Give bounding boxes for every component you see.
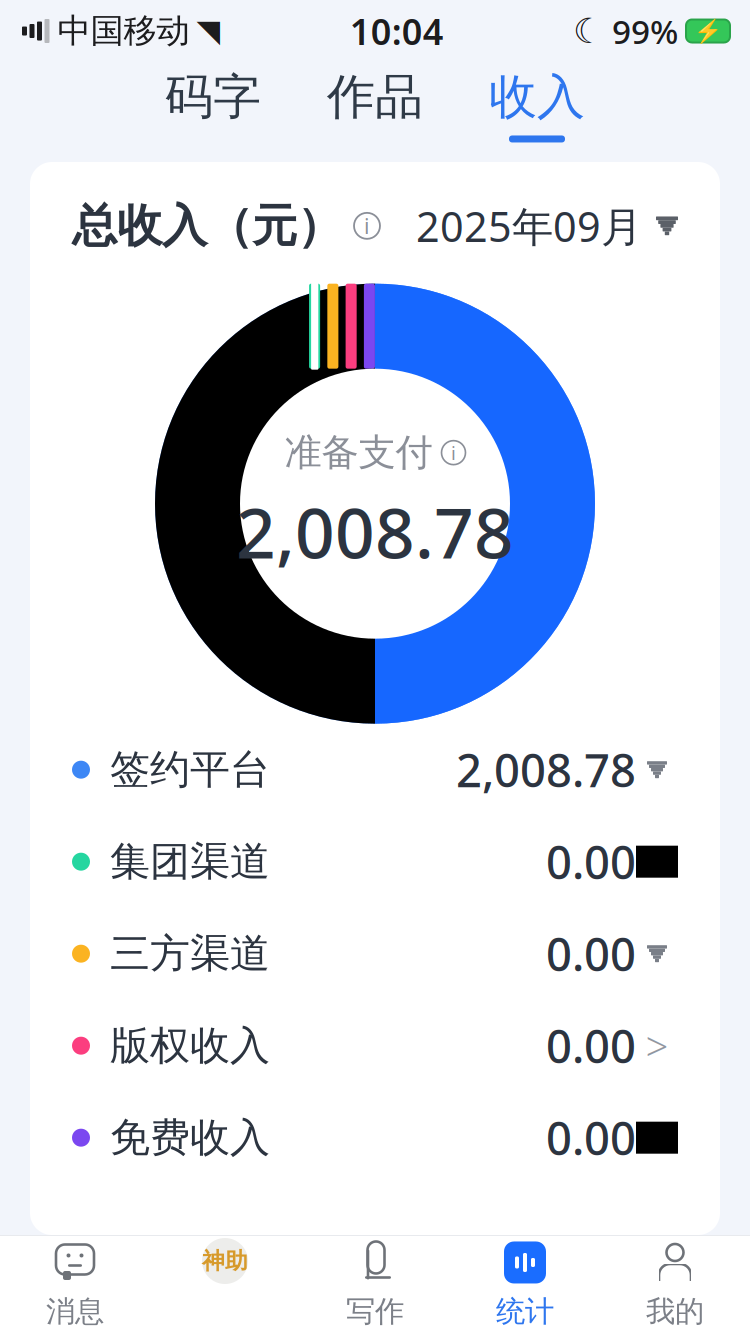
staticText: 0.00 [546,832,636,892]
staticText: > [645,1019,668,1072]
staticText: 收入 [489,67,585,126]
button[interactable]: 统计 [450,1235,600,1334]
staticText: 码字 [165,67,261,126]
button[interactable]: 版权收入 [30,1000,720,1092]
staticText: 免费收入 [110,1113,270,1162]
staticText: 我的 [646,1293,704,1329]
staticText: 中国移动 [57,10,189,51]
button[interactable]: 码字 [158,67,268,142]
staticText: 2025年09月 [416,198,642,253]
staticText: 0.00 [546,1016,636,1076]
button[interactable]: 收入 [482,67,592,142]
button[interactable]: 作品 [320,67,430,142]
staticText: 签约平台 [110,745,270,794]
button[interactable]: 消息 [0,1235,150,1334]
staticText: 作品 [327,67,423,126]
staticText: 写作 [346,1293,404,1329]
staticText: 总收入（元） [72,198,342,254]
staticText: ☾ [573,11,604,51]
staticText: 消息 [46,1293,104,1329]
staticText: 2,008.78 [236,486,514,578]
staticText: 版权收入 [110,1021,270,1070]
button[interactable]: 写作 [300,1235,450,1334]
staticText: 10:04 [350,7,444,55]
staticText: ◥ [196,14,220,48]
button[interactable]: 我的 [600,1235,750,1334]
button[interactable]: 神助 [150,1235,300,1334]
staticText: 0.00 [546,924,636,984]
button[interactable]: 签约平台 [30,724,720,816]
staticText: 2,008.78 [456,740,636,800]
button[interactable]: 三方渠道 [30,908,720,1000]
staticText: 99% [612,9,678,53]
staticText: 集团渠道 [110,837,270,886]
staticText: ⚡ [694,18,722,44]
staticText: i [451,440,456,465]
button[interactable]: 2025年09月 [416,198,678,253]
button[interactable]: 免费收入 [30,1092,720,1184]
staticText: 准备支付 [284,430,432,476]
button[interactable]: 集团渠道 [30,816,720,908]
staticText: 统计 [496,1293,554,1329]
staticText: 神助 [202,1247,248,1275]
staticText: i [364,212,370,240]
staticText: 三方渠道 [110,929,270,978]
staticText: 0.00 [546,1108,636,1168]
